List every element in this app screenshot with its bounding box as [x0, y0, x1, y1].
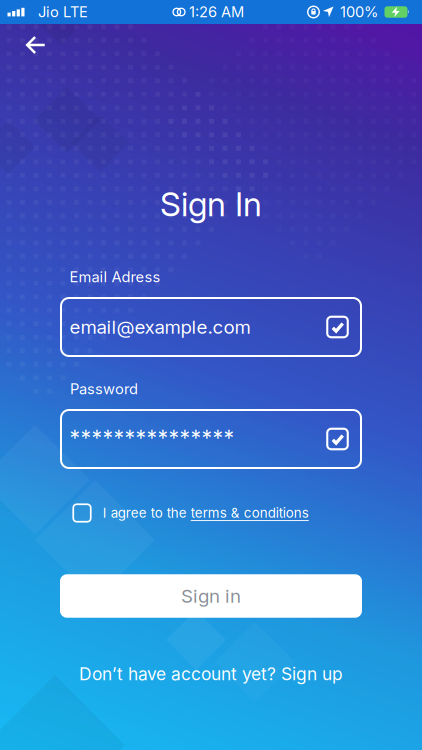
button[interactable]: email@example.com [61, 298, 361, 356]
staticText: I agree to the terms & conditions [103, 505, 309, 521]
staticText: Sign in [181, 585, 241, 607]
button[interactable]: Sign in [60, 574, 362, 618]
staticText: 1:26 AM [189, 3, 244, 21]
staticText: 100% [340, 3, 378, 21]
staticText: Password [70, 380, 138, 398]
button[interactable] [14, 27, 58, 63]
staticText: email@example.com [69, 316, 250, 338]
staticText: Jio LTE [38, 3, 88, 21]
button[interactable]: I agree to the terms & conditions [73, 504, 309, 522]
staticText: Don’t have account yet? Sign up [79, 664, 343, 684]
button[interactable]: *************** [61, 410, 361, 468]
staticText: Email Adress [69, 268, 160, 286]
staticText: *************** [69, 425, 234, 451]
button[interactable]: Don’t have account yet? Sign up [79, 664, 343, 684]
staticText: Sign In [160, 184, 262, 224]
